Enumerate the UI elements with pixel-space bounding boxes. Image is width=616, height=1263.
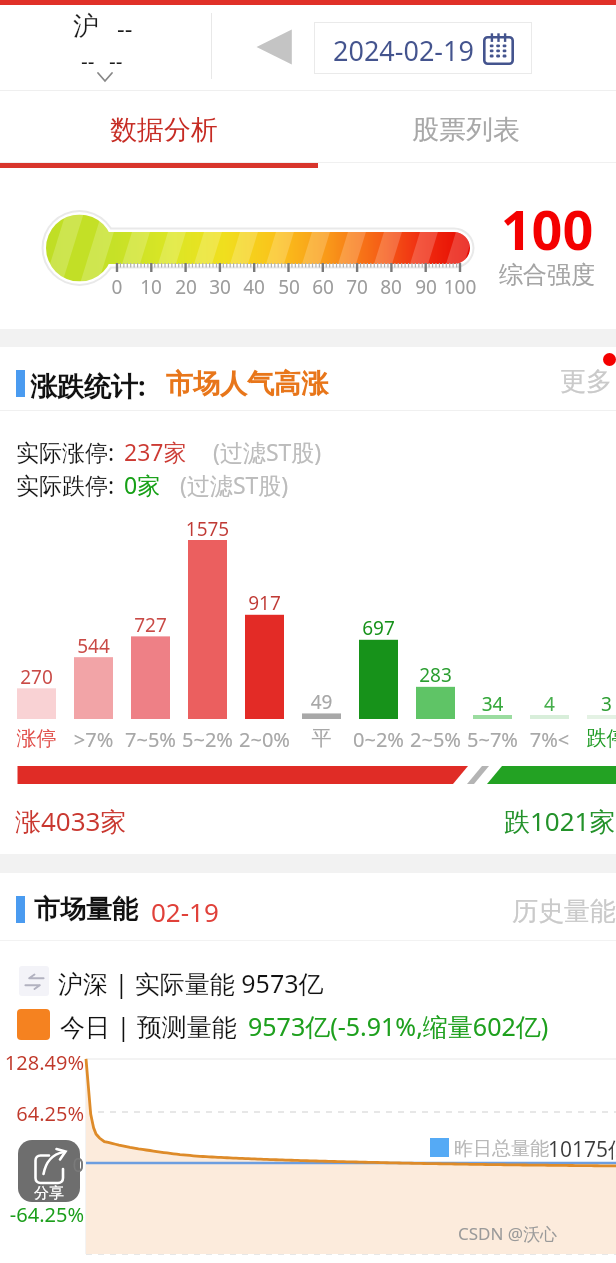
staticText: 市场量能 [34, 893, 138, 926]
staticText: 0 [0, 1151, 84, 1178]
staticText: 沪深 | 实际量能 9573亿 [58, 966, 324, 1000]
staticText: 涨停 [8, 726, 65, 751]
staticText: -64.25% [0, 1201, 84, 1228]
staticText: 跌停 [578, 726, 616, 751]
staticText: 90 [396, 274, 456, 300]
staticText: 3 [578, 691, 616, 717]
staticText: 30 [190, 274, 250, 300]
staticText: 70 [327, 274, 387, 300]
staticText: 实际涨停: [16, 436, 115, 467]
staticText: CSDN @沃心 [458, 1222, 558, 1245]
staticText: 5~2% [179, 726, 236, 753]
staticText: 市场人气高涨 [166, 367, 328, 401]
button[interactable]: 涨跌统计: [30, 367, 146, 401]
staticText: 50 [259, 274, 319, 300]
staticText: 237家 [124, 436, 187, 467]
staticText: 2024-02-19 [333, 32, 474, 69]
staticText: 10 [121, 274, 181, 300]
staticText: 历史量能 [512, 895, 616, 927]
staticText: -- [117, 11, 133, 44]
staticText: 917 [236, 590, 293, 616]
staticText: 2~0% [236, 726, 293, 753]
staticText: 40 [224, 274, 284, 300]
staticText: (过滤ST股) [213, 436, 322, 467]
staticText: 沪 [73, 10, 99, 43]
staticText: 9573亿(-5.91%,缩量602亿) [248, 1009, 549, 1043]
staticText: 1575 [179, 516, 236, 542]
staticText: 综合强度 [478, 260, 616, 290]
staticText: 7~5% [122, 726, 179, 753]
staticText: 平 [293, 726, 350, 751]
staticText: 7%< [521, 726, 578, 753]
staticText: -- [81, 47, 95, 76]
staticText: 0家 [124, 469, 161, 500]
staticText: 数据分析 [110, 113, 218, 147]
staticText: 20 [156, 274, 216, 300]
staticText: 0 [87, 274, 147, 300]
button[interactable]: 2024-02-19 [314, 22, 532, 74]
staticText: 697 [350, 615, 407, 641]
staticText: 股票列表 [412, 113, 520, 147]
button[interactable]: 市场量能 [34, 893, 138, 927]
button[interactable]: Share [18, 1140, 80, 1202]
staticText: 02-19 [151, 894, 219, 929]
button[interactable]: 沪 [0, 5, 211, 89]
staticText: 实际跌停: [16, 469, 115, 500]
staticText: 分享 [34, 1184, 64, 1202]
staticText: 今日 | 预测量能 [60, 1009, 237, 1043]
staticText: 283 [407, 662, 464, 688]
staticText: -- [109, 47, 123, 76]
staticText: 4 [521, 691, 578, 717]
staticText: 昨日总量能 [454, 1137, 549, 1161]
staticText: 60 [293, 274, 353, 300]
staticText: 10175亿 [548, 1135, 616, 1164]
staticText: 更多 [560, 365, 612, 398]
staticText: 0~2% [350, 726, 407, 753]
button[interactable]: 股票列表 [316, 98, 616, 162]
staticText: 270 [8, 664, 65, 690]
staticText: 跌1021家 [504, 803, 616, 839]
staticText: 128.49% [0, 1049, 84, 1076]
staticText: 100 [478, 192, 616, 266]
staticText: 49 [293, 689, 350, 715]
staticText: (过滤ST股) [180, 469, 289, 500]
staticText: 100 [430, 274, 490, 300]
staticText: 727 [122, 612, 179, 638]
button[interactable]: 历史量能 [512, 895, 616, 927]
button[interactable]: 数据分析 [10, 98, 318, 162]
staticText: 64.25% [0, 1100, 84, 1127]
button[interactable]: 更多 [560, 364, 612, 398]
staticText: 5~7% [464, 726, 521, 753]
staticText: 0 [0, 1151, 84, 1178]
staticText: 2~5% [407, 726, 464, 753]
staticText: 34 [464, 691, 521, 717]
staticText: 80 [361, 274, 421, 300]
staticText: 544 [65, 633, 122, 659]
button[interactable]: Previous day [254, 25, 296, 69]
staticText: >7% [65, 726, 122, 753]
staticText: 涨跌统计: [30, 367, 146, 401]
staticText: 涨4033家 [15, 803, 127, 839]
